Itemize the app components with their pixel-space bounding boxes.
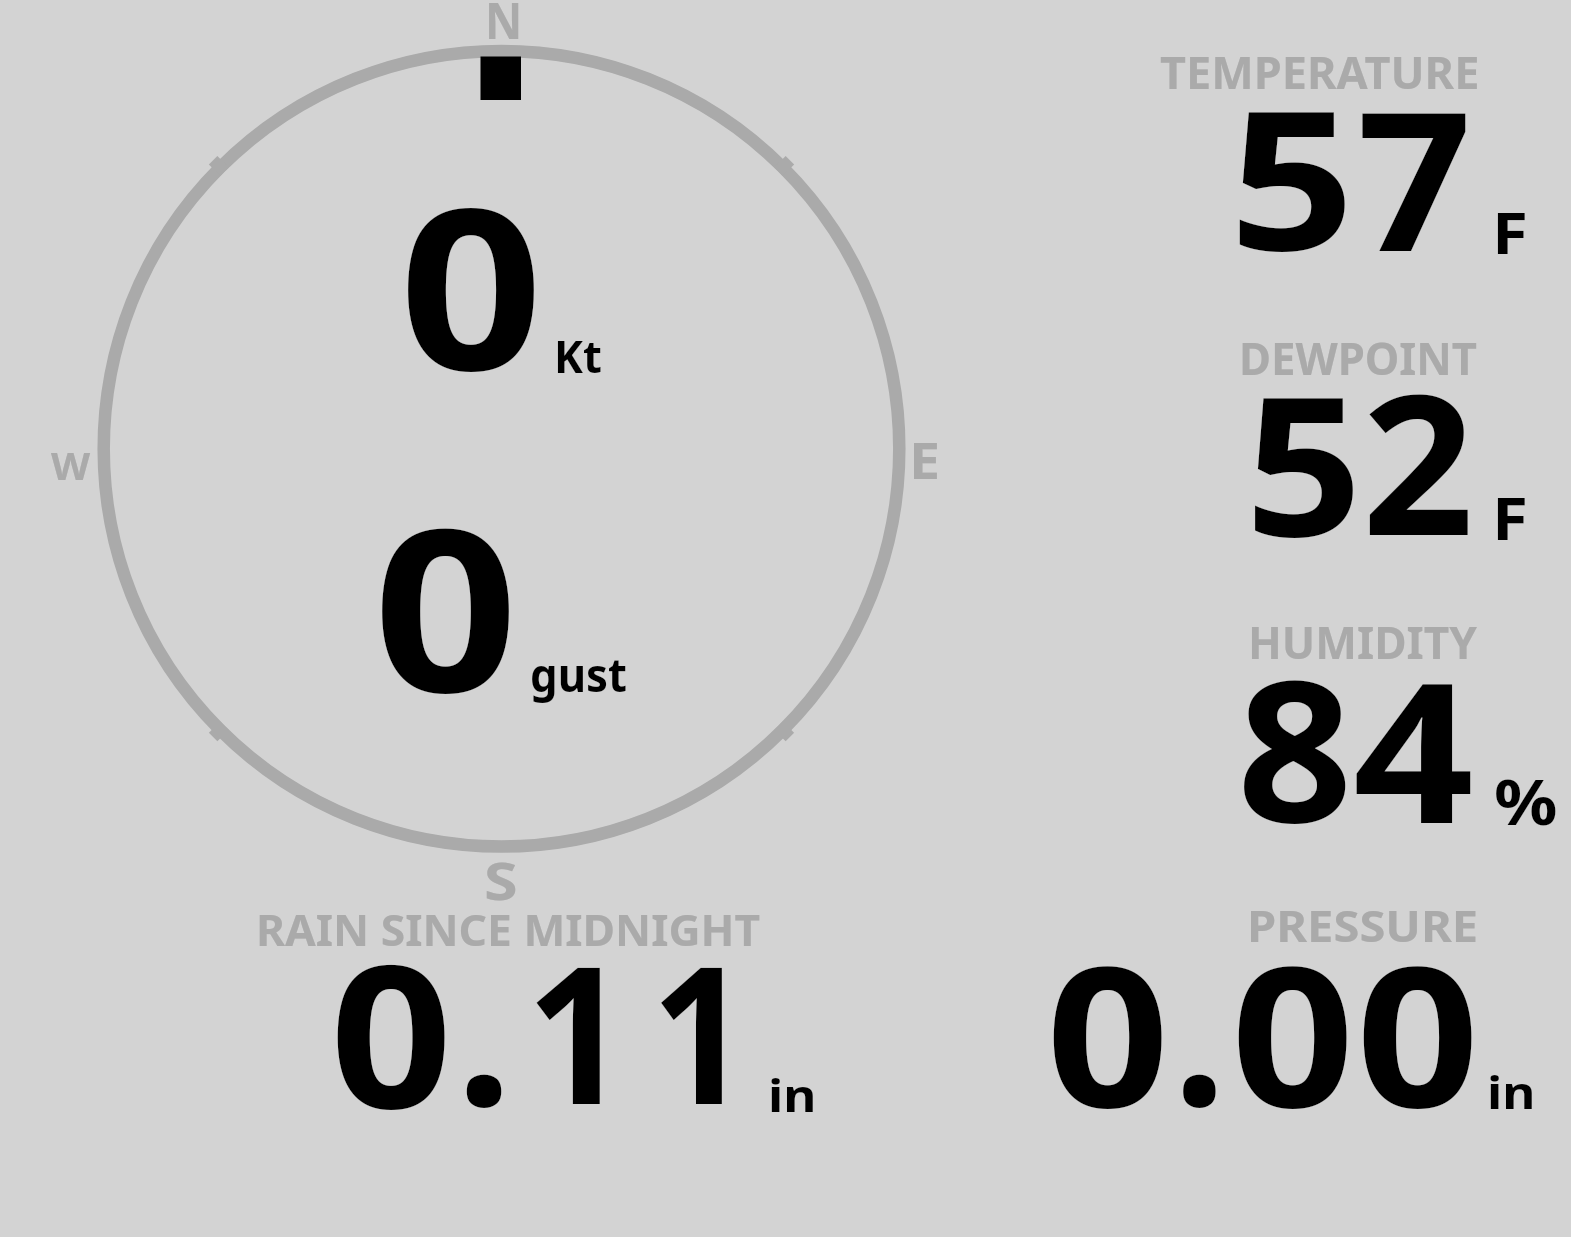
- staticText: N: [485, 0, 523, 54]
- staticText: in: [1487, 1061, 1536, 1122]
- button[interactable]: Humidity: [1000, 590, 1560, 860]
- button[interactable]: Wind speed and direction: [60, 20, 940, 880]
- staticText: 0: [399, 132, 544, 436]
- staticText: E: [909, 426, 940, 494]
- staticText: DEWPOINT: [1239, 327, 1477, 388]
- staticText: 0: [1046, 900, 1170, 1164]
- staticText: 0: [1356, 900, 1480, 1164]
- button[interactable]: Rain since midnight: [180, 890, 880, 1150]
- staticText: S: [484, 845, 519, 915]
- staticText: 0: [373, 452, 519, 757]
- staticText: HUMIDITY: [1248, 610, 1478, 672]
- staticText: 5: [1229, 45, 1355, 306]
- button[interactable]: Temperature: [1000, 20, 1560, 290]
- staticText: 0: [1231, 900, 1355, 1164]
- staticText: in: [768, 1064, 817, 1126]
- staticText: 7: [1357, 45, 1473, 307]
- staticText: .: [456, 891, 513, 1163]
- staticText: 8: [1237, 613, 1353, 879]
- staticText: 1: [651, 901, 750, 1159]
- staticText: F: [1492, 477, 1529, 557]
- staticText: TEMPERATURE: [1160, 41, 1480, 102]
- staticText: 5: [1245, 330, 1363, 593]
- button[interactable]: Pressure: [1000, 880, 1560, 1150]
- staticText: PRESSURE: [1247, 895, 1479, 955]
- staticText: 4: [1353, 615, 1475, 880]
- staticText: .: [1173, 891, 1226, 1163]
- button[interactable]: Dewpoint: [1000, 300, 1560, 570]
- staticText: gust: [530, 643, 627, 705]
- staticText: RAIN SINCE MIDNIGHT: [256, 900, 760, 959]
- staticText: Kt: [554, 325, 602, 387]
- staticText: 2: [1362, 328, 1474, 592]
- staticText: 0: [330, 897, 453, 1165]
- staticText: F: [1492, 193, 1528, 271]
- staticText: 1: [526, 901, 629, 1159]
- staticText: W: [51, 440, 91, 491]
- staticText: %: [1494, 759, 1558, 843]
